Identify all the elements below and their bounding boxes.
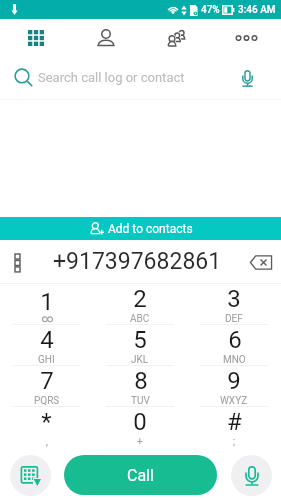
staticText: WXYZ xyxy=(220,395,248,407)
staticText: 9 xyxy=(227,367,241,395)
staticText: Add to contacts xyxy=(108,222,193,236)
button[interactable]: 6 xyxy=(187,325,281,366)
button[interactable]: 9 xyxy=(187,366,281,407)
staticText: TUV xyxy=(131,395,150,407)
button[interactable]: Contacts xyxy=(71,19,141,56)
staticText: DEF xyxy=(225,313,243,325)
staticText: 4 xyxy=(40,326,54,354)
staticText: 47% xyxy=(201,4,220,16)
button[interactable]: * xyxy=(0,407,93,448)
staticText: GHI xyxy=(38,354,55,366)
staticText: + xyxy=(137,436,143,448)
button[interactable]: 8 xyxy=(93,366,187,407)
staticText: Call xyxy=(127,466,154,485)
button[interactable]: Voice xyxy=(231,455,272,496)
button[interactable]: 1 xyxy=(0,284,93,325)
button[interactable]: Add to contacts xyxy=(0,217,281,240)
button[interactable]: 7 xyxy=(0,366,93,407)
staticText: +917397682861 xyxy=(53,248,222,275)
button[interactable]: Hide dialpad xyxy=(10,455,51,496)
staticText: 0 xyxy=(133,408,147,436)
button[interactable]: Dialpad xyxy=(0,19,71,56)
button[interactable]: 4 xyxy=(0,325,93,366)
staticText: 3:46 AM xyxy=(238,4,276,16)
staticText: JKL xyxy=(131,354,149,366)
button[interactable]: Call xyxy=(64,455,217,495)
button[interactable]: Voice search xyxy=(230,61,264,95)
staticText: 7 xyxy=(40,367,54,395)
staticText: # xyxy=(227,408,242,436)
button[interactable]: Search call log or contact xyxy=(0,56,281,99)
staticText: 6 xyxy=(228,326,242,354)
button[interactable]: # xyxy=(187,407,281,448)
staticText: Search call log or contact xyxy=(38,70,185,85)
staticText: ; xyxy=(233,436,236,448)
button[interactable]: 2 xyxy=(93,284,187,325)
staticText: 2 xyxy=(133,285,147,313)
button[interactable]: 5 xyxy=(93,325,187,366)
button[interactable]: More options xyxy=(0,245,34,279)
staticText: 8 xyxy=(134,367,148,395)
button[interactable]: Backspace xyxy=(241,242,281,282)
staticText: 3 xyxy=(227,285,241,313)
staticText: 5 xyxy=(133,326,147,354)
button[interactable]: 0 xyxy=(93,407,187,448)
button[interactable]: More options xyxy=(211,19,281,56)
button[interactable]: 3 xyxy=(187,284,281,325)
staticText: , xyxy=(46,436,48,448)
staticText: ABC xyxy=(130,313,150,325)
button[interactable]: Groups xyxy=(141,19,211,56)
staticText: MNO xyxy=(223,354,246,366)
staticText: PQRS xyxy=(34,395,60,407)
staticText: 1 xyxy=(40,288,54,316)
staticText: * xyxy=(41,408,52,436)
